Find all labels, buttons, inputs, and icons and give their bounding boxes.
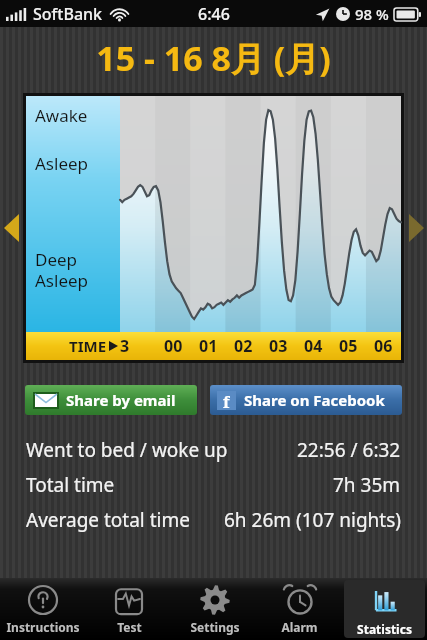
staticText: 3: [120, 335, 130, 357]
staticText: 15 - 16 8月 (月): [96, 35, 331, 81]
staticText: 03: [269, 335, 288, 357]
button[interactable]: Instructions: [0, 578, 86, 640]
staticText: Went to bed / woke up: [26, 437, 228, 463]
staticText: Instructions: [6, 619, 80, 635]
staticText: 98 %: [355, 4, 389, 24]
staticText: 05: [339, 335, 358, 357]
staticText: 22:56 / 6:32: [297, 437, 401, 463]
staticText: TIME: [69, 336, 107, 356]
staticText: 02: [234, 335, 253, 357]
staticText: 6:46: [198, 3, 230, 25]
staticText: Awake: [35, 104, 88, 127]
staticText: 04: [304, 335, 323, 357]
button[interactable]: Settings: [172, 578, 257, 640]
staticText: Test: [117, 619, 142, 635]
button[interactable]: Statistics: [344, 580, 425, 638]
staticText: 7h 35m: [333, 472, 401, 498]
staticText: 6h 26m (107 nights): [224, 507, 401, 533]
button[interactable]: f: [210, 385, 402, 415]
button[interactable]: Alarm: [257, 578, 342, 640]
staticText: Total time: [26, 472, 115, 498]
staticText: Settings: [190, 619, 240, 635]
staticText: Statistics: [357, 621, 412, 637]
staticText: Share by email: [66, 390, 176, 410]
staticText: 06: [374, 335, 393, 357]
button[interactable]: Share by email: [25, 385, 197, 415]
staticText: Deep Asleep: [35, 248, 89, 292]
staticText: 00: [164, 335, 183, 357]
button[interactable]: Next night: [405, 205, 427, 251]
staticText: Share on Facebook: [244, 390, 385, 410]
staticText: Average total time: [26, 507, 190, 533]
staticText: Asleep: [35, 152, 89, 175]
button[interactable]: Previous night: [0, 205, 22, 251]
button[interactable]: Awake: [26, 96, 401, 360]
staticText: f: [223, 391, 230, 410]
button[interactable]: Test: [86, 578, 172, 640]
staticText: 01: [199, 335, 218, 357]
staticText: Alarm: [281, 619, 318, 635]
staticText: SoftBank: [33, 3, 103, 25]
